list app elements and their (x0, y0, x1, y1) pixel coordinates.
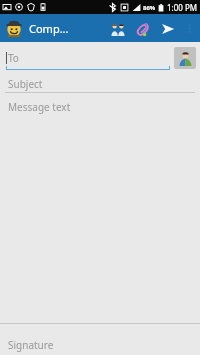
staticText: To (8, 51, 19, 65)
staticText: Message text (8, 100, 71, 114)
button[interactable]: Navigate up (3, 17, 25, 39)
button[interactable]: Comp... (29, 21, 69, 36)
staticText: Subject (8, 77, 43, 91)
button[interactable]: Attach file (130, 16, 155, 41)
button[interactable]: Add recipients (105, 16, 130, 41)
button[interactable]: Message text (0, 100, 200, 323)
button[interactable]: Signature (0, 335, 200, 355)
staticText: 86% (143, 4, 156, 12)
staticText: 1:00 PM (167, 2, 198, 13)
button[interactable]: Subject (0, 74, 200, 93)
button[interactable]: Send (155, 16, 180, 41)
staticText: Signature (8, 338, 54, 352)
button[interactable]: To (6, 46, 170, 70)
button[interactable]: Pick contact (174, 47, 196, 69)
